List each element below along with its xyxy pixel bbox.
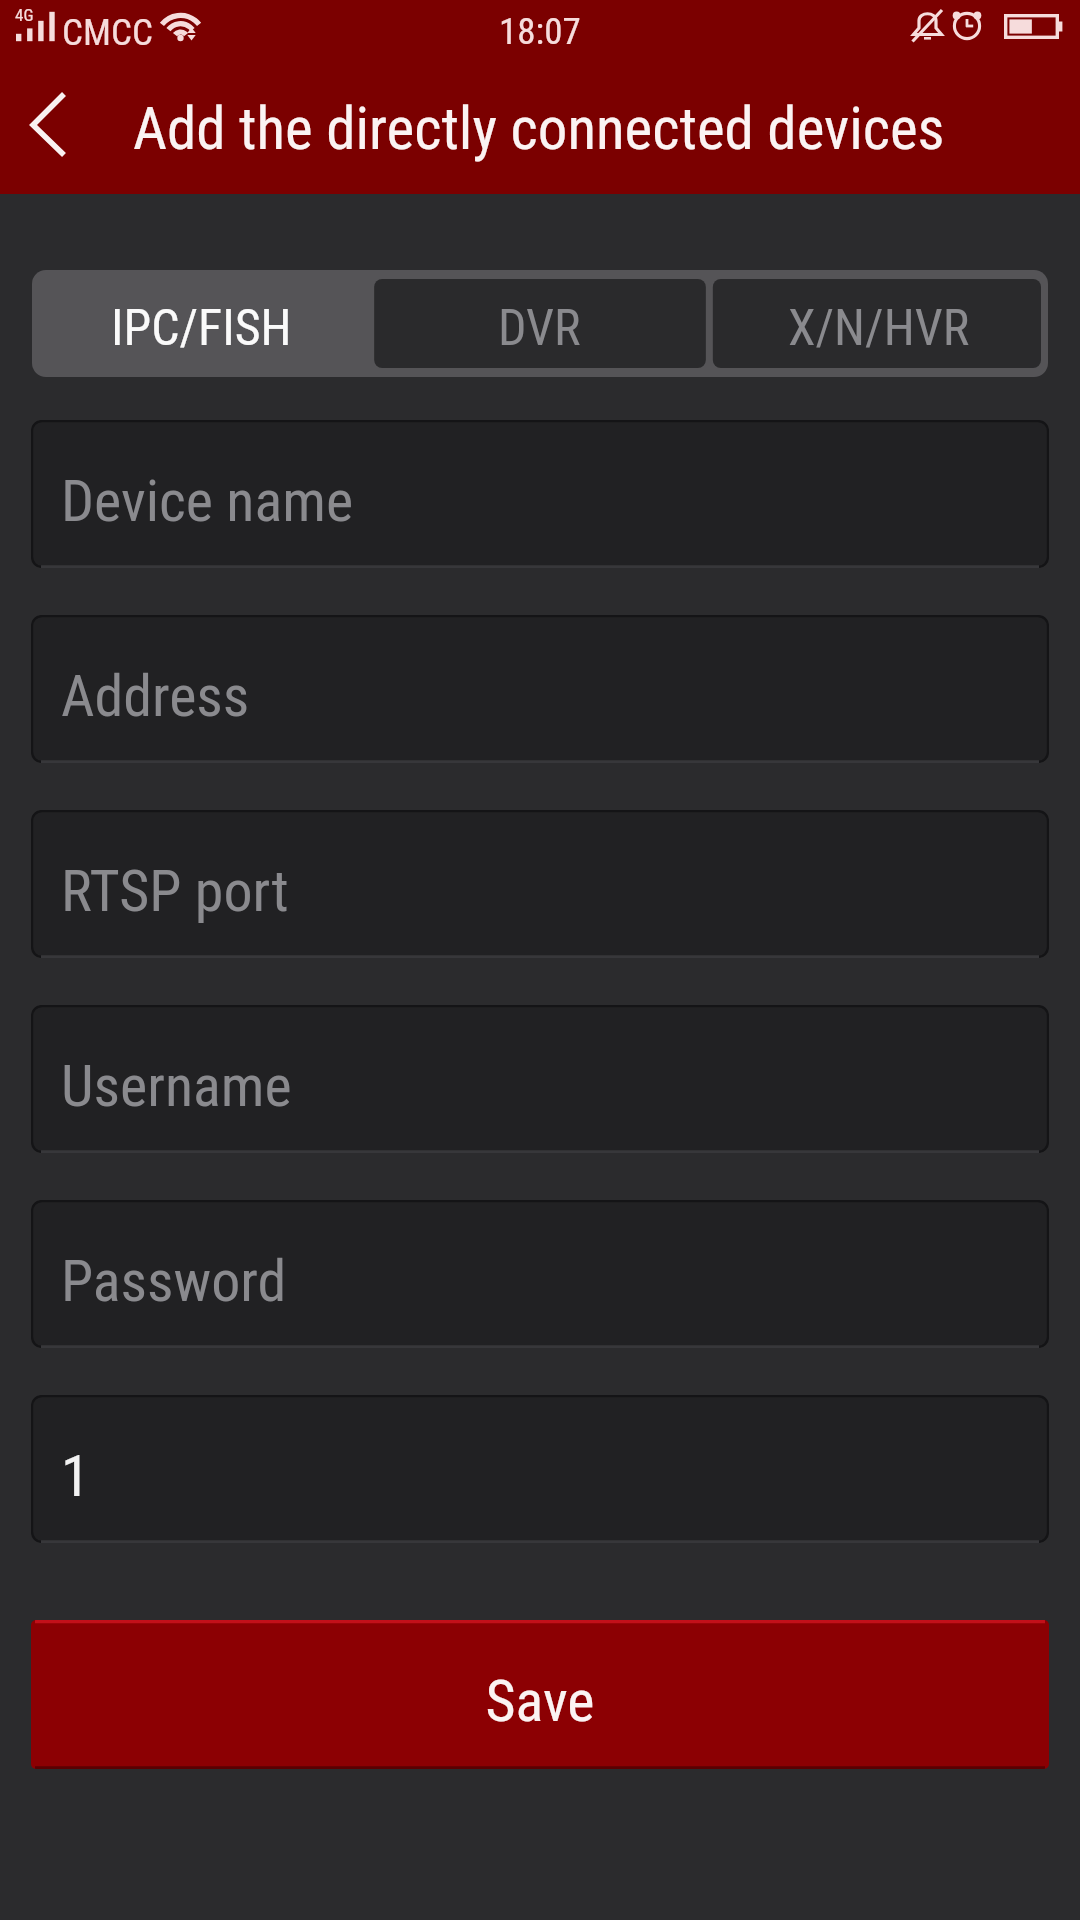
button[interactable]: Back — [4, 62, 94, 194]
staticText: CMCC — [62, 11, 153, 54]
staticText: Save — [485, 1667, 595, 1735]
button[interactable]: Device name — [31, 420, 1049, 568]
staticText: Username — [61, 1052, 292, 1120]
staticText: Add the directly connected devices — [133, 94, 945, 163]
staticText: Device name — [61, 467, 354, 535]
staticText: DVR — [498, 299, 581, 358]
staticText: RTSP port — [61, 857, 289, 925]
staticText: 1 — [61, 1442, 90, 1510]
button[interactable]: Password — [31, 1200, 1049, 1348]
button[interactable]: 1 — [31, 1395, 1049, 1543]
staticText: IPC/FISH — [111, 299, 292, 358]
staticText: X/N/HVR — [788, 299, 970, 358]
button[interactable]: IPC/FISH — [32, 270, 370, 377]
staticText: 4G — [15, 5, 34, 25]
button[interactable]: DVR — [370, 270, 709, 377]
button[interactable]: Username — [31, 1005, 1049, 1153]
button[interactable]: Save — [31, 1620, 1049, 1769]
button[interactable]: Address — [31, 615, 1049, 763]
button[interactable]: X/N/HVR — [709, 270, 1048, 377]
staticText: Address — [61, 662, 250, 730]
staticText: Password — [61, 1247, 287, 1315]
staticText: 18:07 — [499, 10, 581, 53]
button[interactable]: RTSP port — [31, 810, 1049, 958]
